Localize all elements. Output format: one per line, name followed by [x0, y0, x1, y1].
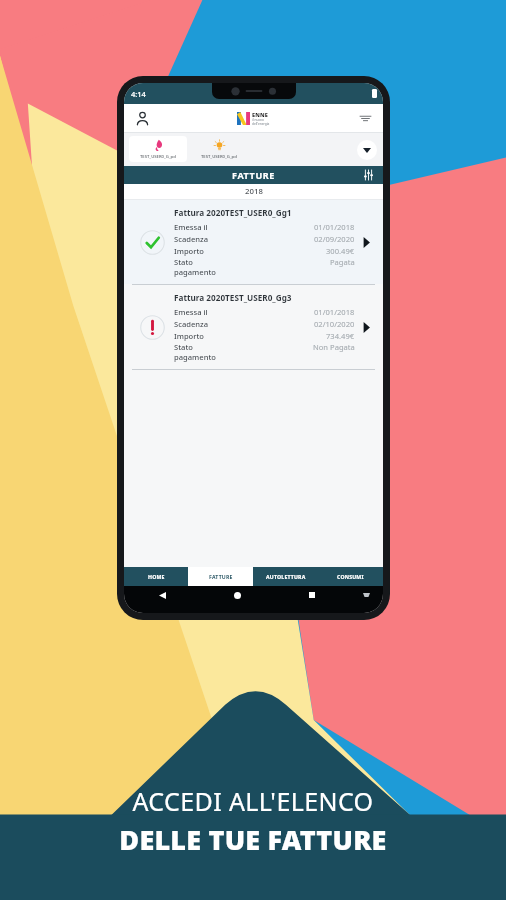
button[interactable]: Recents: [304, 587, 320, 603]
button[interactable]: Profile: [132, 108, 152, 128]
staticText: Fattura 2020TEST_USER0_Gg3: [174, 292, 292, 303]
staticText: Stato: [174, 257, 193, 267]
staticText: Emessa il: [174, 222, 314, 232]
button[interactable]: Home: [229, 587, 245, 603]
staticText: 734.49€: [326, 331, 355, 341]
staticText: 02/09/2020: [314, 234, 355, 244]
staticText: FATTURE: [154, 169, 353, 181]
staticText: Importo: [174, 331, 326, 341]
button[interactable]: AUTOLETTURA: [253, 567, 318, 586]
button[interactable]: CONSUMI: [318, 567, 383, 586]
staticText: 02/10/2020: [314, 319, 355, 329]
button[interactable]: FATTURE: [188, 567, 253, 586]
button[interactable]: Back: [154, 587, 170, 603]
staticText: DELLE TUE FATTURE: [119, 821, 387, 858]
staticText: pagamento: [174, 352, 216, 362]
staticText: Scadenza: [174, 234, 314, 244]
staticText: HOME: [148, 573, 165, 580]
staticText: dell'energia: [252, 122, 270, 126]
staticText: Pagata: [330, 257, 355, 267]
staticText: Non Pagata: [313, 342, 355, 352]
button[interactable]: HOME: [124, 567, 188, 586]
staticText: pagamento: [174, 267, 216, 277]
staticText: 2018: [245, 186, 263, 197]
staticText: Importo: [174, 246, 326, 256]
staticText: Fattura 2020TEST_USER0_Gg1: [174, 207, 292, 218]
staticText: 01/01/2018: [314, 222, 355, 232]
staticText: TEST_USER0_G_pd: [140, 154, 176, 160]
button[interactable]: TEST_USER0_G_pd: [129, 136, 187, 162]
staticText: Stato: [174, 342, 193, 352]
staticText: TEST_USER0_G_pd: [201, 154, 237, 160]
button[interactable]: Fattura 2020TEST_USER0_Gg1: [124, 200, 383, 284]
staticText: ACCEDI ALL'ELENCO: [132, 784, 374, 818]
staticText: 300.49€: [326, 246, 355, 256]
staticText: AUTOLETTURA: [266, 573, 306, 580]
button[interactable]: Filter: [355, 108, 375, 128]
staticText: FATTURE: [209, 573, 233, 580]
staticText: Emessa il: [174, 307, 314, 317]
button[interactable]: Keyboard: [358, 587, 374, 603]
staticText: il nuovo: [252, 118, 264, 122]
staticText: Scadenza: [174, 319, 314, 329]
staticText: CONSUMI: [337, 573, 364, 580]
button[interactable]: TEST_USER0_G_pd: [190, 136, 248, 162]
button[interactable]: Fattura 2020TEST_USER0_Gg3: [124, 285, 383, 369]
staticText: 4:14: [131, 89, 146, 99]
button[interactable]: Expand: [357, 140, 377, 160]
staticText: 01/01/2018: [314, 307, 355, 317]
button[interactable]: Sort options: [353, 169, 383, 181]
staticText: ENNE: [252, 111, 269, 118]
